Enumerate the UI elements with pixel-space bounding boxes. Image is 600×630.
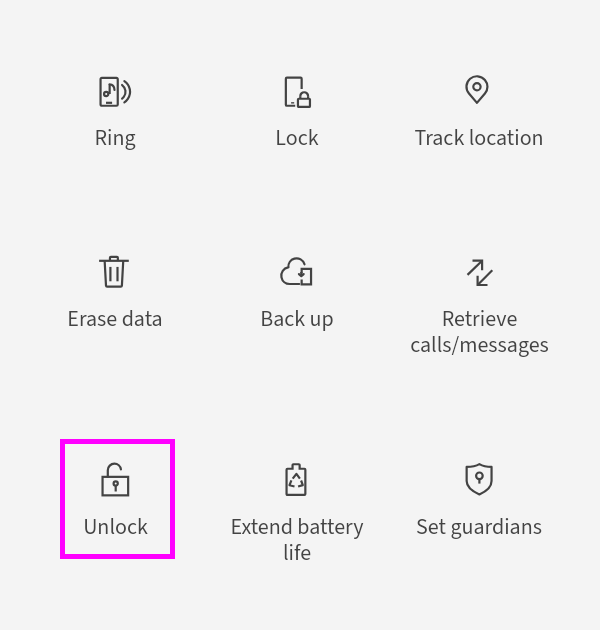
staticText: Extend battery life bbox=[230, 511, 364, 568]
staticText: Erase data bbox=[67, 303, 163, 334]
button[interactable]: Back up bbox=[242, 231, 357, 351]
button[interactable]: Track location bbox=[424, 51, 539, 171]
staticText: Set guardians bbox=[416, 511, 542, 542]
staticText: Ring bbox=[94, 122, 136, 153]
staticText: Track location bbox=[414, 122, 544, 153]
staticText: Unlock bbox=[83, 511, 148, 542]
button[interactable]: Retrieve calls and messages bbox=[424, 231, 539, 351]
button[interactable]: Set guardians bbox=[424, 439, 539, 559]
staticText: Back up bbox=[260, 303, 334, 334]
button[interactable]: Ring bbox=[60, 51, 175, 171]
button[interactable]: Unlock bbox=[60, 439, 175, 559]
button[interactable]: Extend battery life bbox=[242, 439, 357, 559]
staticText: Retrieve calls/messages bbox=[410, 303, 549, 360]
button[interactable]: Lock bbox=[242, 51, 357, 171]
button[interactable]: Erase data bbox=[60, 231, 175, 351]
staticText: Lock bbox=[275, 122, 319, 153]
